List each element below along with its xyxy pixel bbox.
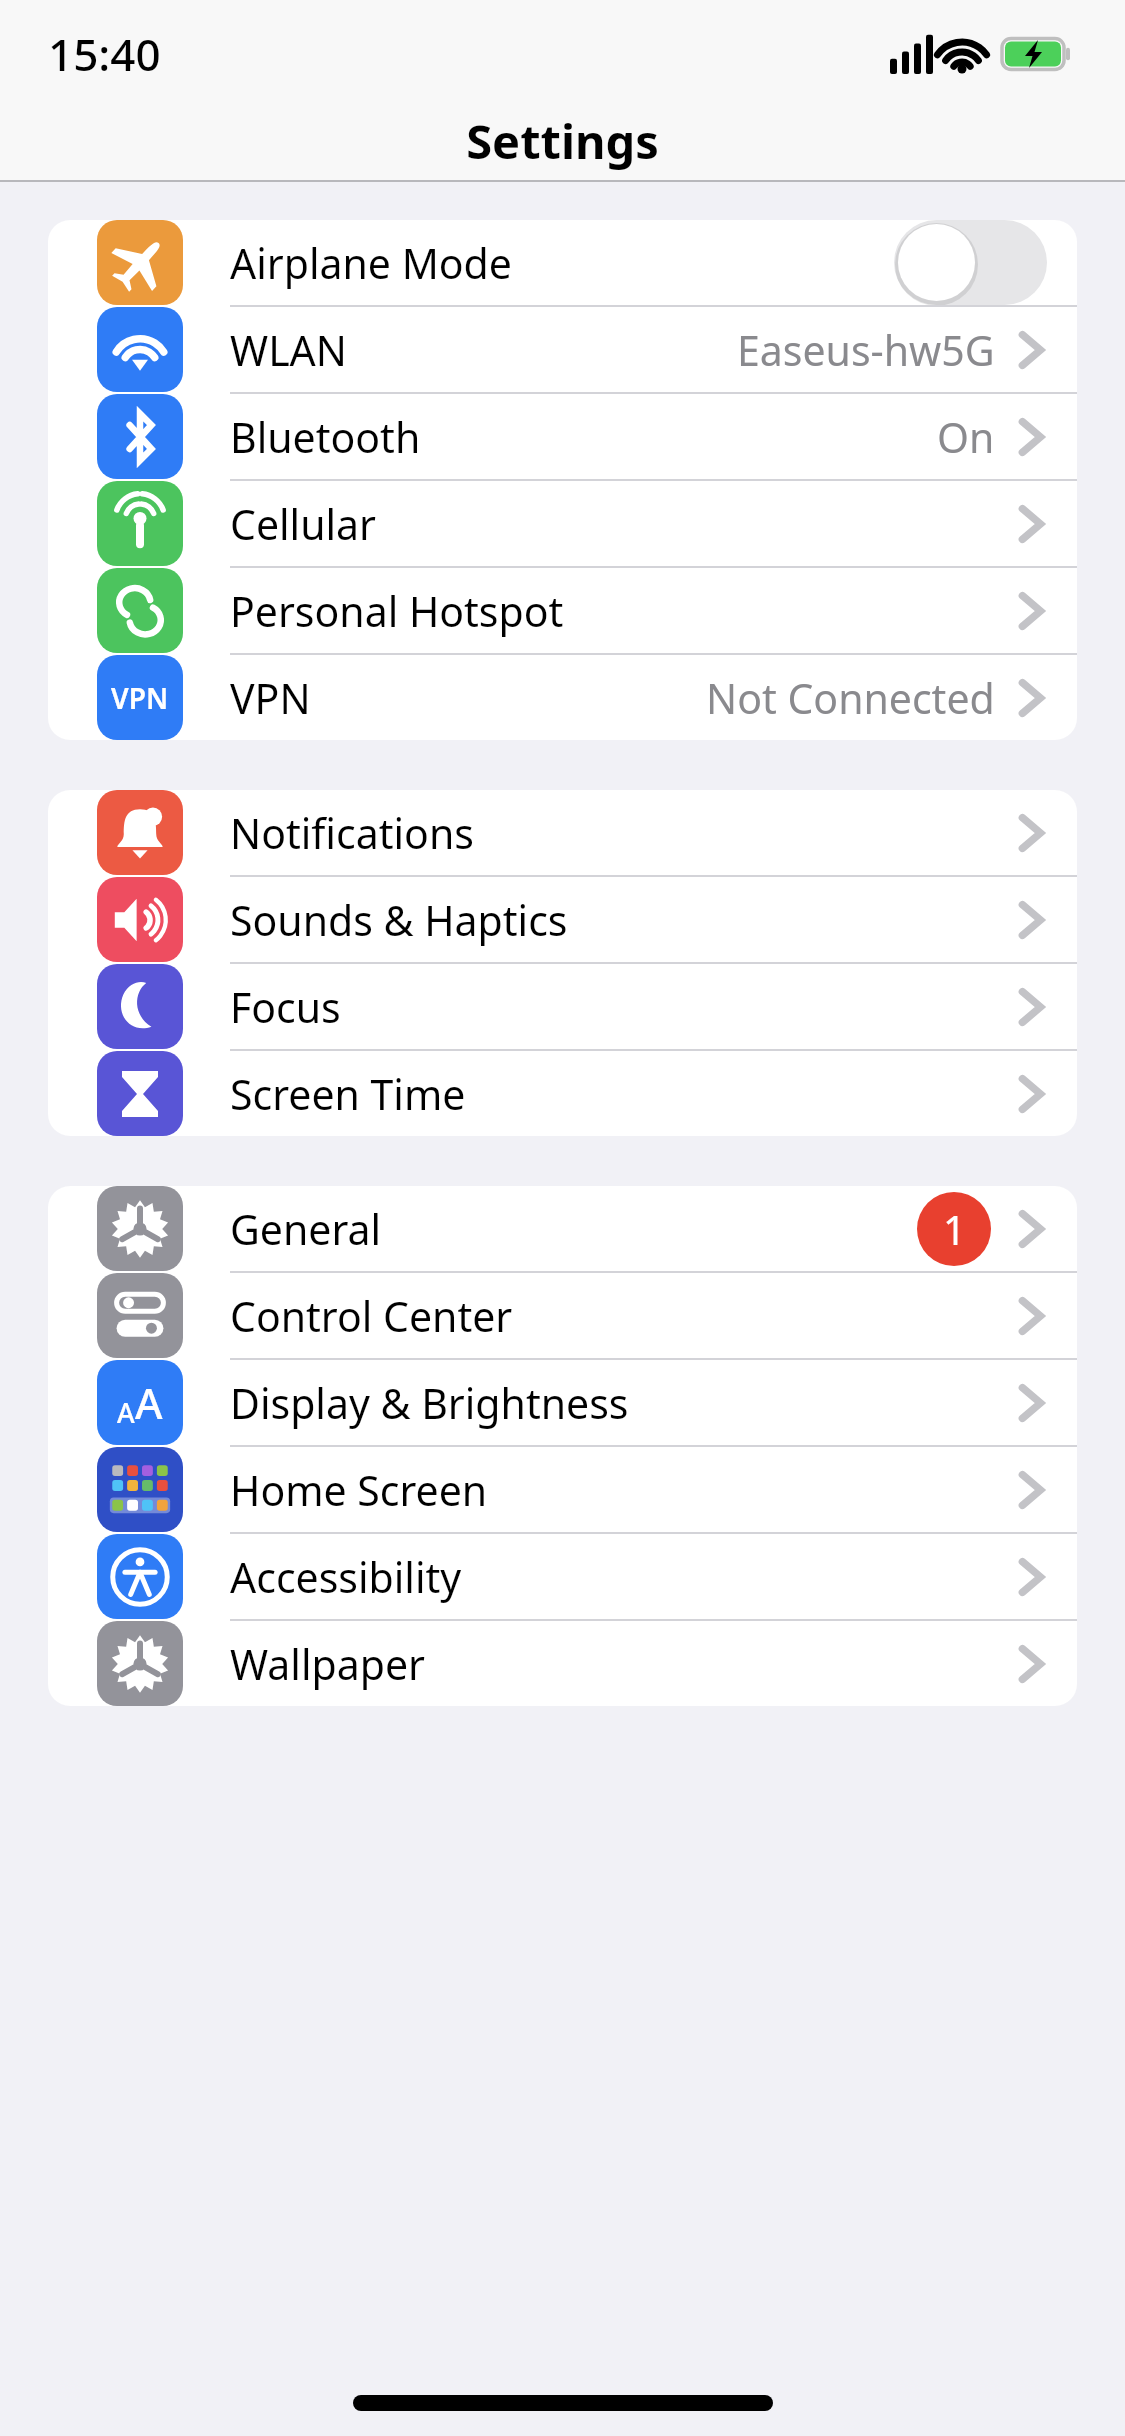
staticText: A [117,1394,135,1431]
staticText: Sounds & Haptics [230,892,568,948]
staticText: WLAN [230,322,347,378]
button[interactable]: Airplane Mode toggle [894,220,1047,305]
button[interactable]: Bluetooth [48,394,1077,479]
button[interactable]: A [48,1360,1077,1445]
button[interactable]: Screen Time [48,1051,1077,1136]
staticText: A [135,1374,163,1431]
staticText: Control Center [230,1288,513,1344]
staticText: Easeus-hw5G [737,322,995,378]
button[interactable]: Cellular [48,481,1077,566]
button[interactable]: Airplane Mode [48,220,1077,305]
staticText: On [937,409,995,465]
staticText: Accessibility [230,1549,462,1605]
button[interactable]: Wallpaper [48,1621,1077,1706]
staticText: 15:40 [48,24,161,84]
button[interactable]: Control Center [48,1273,1077,1358]
staticText: Cellular [230,496,377,552]
button[interactable]: Sounds & Haptics [48,877,1077,962]
staticText: VPN [230,670,311,726]
staticText: General [230,1201,382,1257]
button[interactable]: General [48,1186,1077,1271]
button[interactable]: Accessibility [48,1534,1077,1619]
button[interactable]: Home Screen [48,1447,1077,1532]
staticText: Display & Brightness [230,1375,629,1431]
button[interactable]: Focus [48,964,1077,1049]
staticText: Bluetooth [230,409,421,465]
button[interactable]: Personal Hotspot [48,568,1077,653]
staticText: VPN [111,679,169,717]
staticText: Personal Hotspot [230,583,564,639]
staticText: Not Connected [706,670,995,726]
staticText: 1 [943,1202,966,1256]
staticText: Focus [230,979,341,1035]
staticText: Wallpaper [230,1636,425,1692]
button[interactable]: VPN [48,655,1077,740]
staticText: Screen Time [230,1066,466,1122]
button[interactable]: Notifications [48,790,1077,875]
staticText: Home Screen [230,1462,488,1518]
staticText: Airplane Mode [230,235,512,291]
button[interactable]: WLAN [48,307,1077,392]
staticText: Notifications [230,805,474,861]
staticText: Settings [466,109,659,173]
